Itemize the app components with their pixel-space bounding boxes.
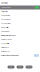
staticText: Control Cent xyxy=(1,31,9,32)
button[interactable]: Display & Brightness xyxy=(0,33,40,37)
staticText: Wallpaper X xyxy=(1,47,9,48)
staticText: Screen Times xyxy=(1,23,11,24)
staticText: Two xyxy=(18,66,21,68)
staticText: Airplane Mode xyxy=(1,7,11,8)
button[interactable]: Notification xyxy=(0,9,40,13)
staticText: Accessibility xyxy=(1,43,9,44)
button[interactable]: Focus Modes xyxy=(0,17,40,21)
button[interactable]: Generalities xyxy=(0,25,40,29)
button[interactable]: Accessibility xyxy=(0,41,40,45)
staticText: Three xyxy=(26,66,31,68)
staticText: Settings xyxy=(1,2,8,4)
staticText: Focus Modes xyxy=(1,19,11,20)
staticText: Display & Brightness xyxy=(1,35,16,36)
staticText: Edit xyxy=(35,55,37,56)
button[interactable]: Siri & Search xyxy=(0,49,40,53)
staticText: Sound Haptic xyxy=(1,15,10,16)
button[interactable]: Airplane Mode xyxy=(0,5,40,9)
staticText: Generalities xyxy=(1,27,9,28)
button[interactable]: Home Screens xyxy=(0,37,40,41)
staticText: Notification xyxy=(1,11,8,12)
button[interactable]: Wallpaper X xyxy=(0,45,40,49)
button[interactable]: Sound Haptic xyxy=(0,13,40,17)
button[interactable]: Two xyxy=(16,65,23,68)
button[interactable]: Control Cent xyxy=(0,29,40,33)
button[interactable]: One xyxy=(7,65,14,68)
button[interactable]: Screen Times xyxy=(0,21,40,25)
staticText: One xyxy=(9,66,12,68)
button[interactable]: Privacy & Security Cent xyxy=(0,53,40,57)
staticText: Siri & Search xyxy=(1,51,10,52)
staticText: Privacy & Security Cent xyxy=(1,55,19,56)
staticText: Home Screens xyxy=(1,39,12,40)
button[interactable]: Three xyxy=(25,65,32,68)
